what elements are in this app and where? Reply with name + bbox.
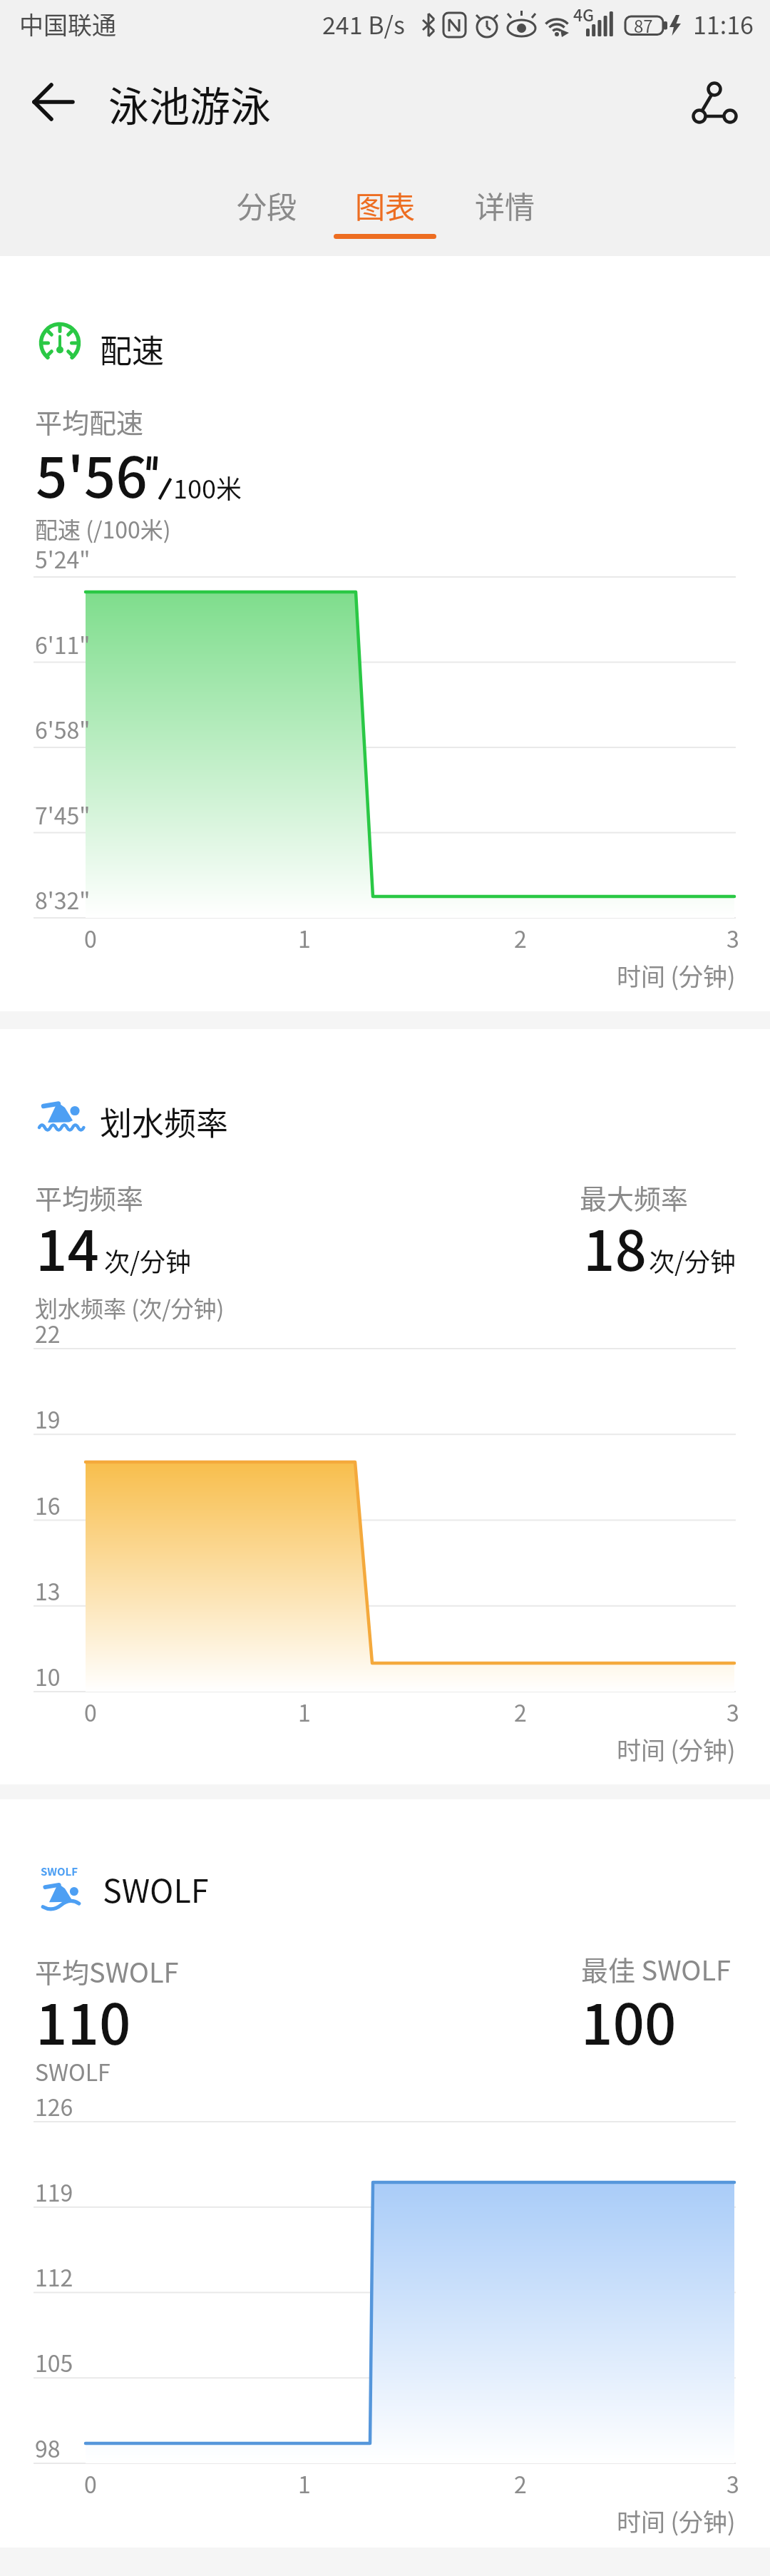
staticText: 126 [35,2090,73,2122]
staticText: 19 [35,1402,61,1435]
staticText: 13 [35,1574,61,1607]
staticText: 3 [727,2467,739,2500]
staticText: 100米 [173,469,242,506]
staticText: 2 [514,1695,527,1728]
staticText: 次/分钟 [104,1242,192,1279]
staticText: 划水频率 (次/分钟) [35,1291,225,1324]
button[interactable] [674,63,752,141]
staticText: 87 [634,13,653,38]
staticText: SWOLF [41,1864,78,1879]
staticText: 时间 (分钟) [617,958,736,993]
staticText: 最佳 SWOLF [581,1949,731,1988]
staticText: 1 [298,921,311,954]
staticText: 11:16 [693,6,754,41]
staticText: 1 [298,2467,311,2500]
staticText: 4G [573,2,595,26]
staticText: 配速 [100,326,165,372]
staticText: 18 [583,1207,647,1287]
staticText: 平均频率 [35,1177,144,1217]
staticText: 7'45" [35,798,91,831]
staticText: 2 [514,2467,527,2500]
button[interactable]: 图表 [327,169,443,240]
staticText: 105 [35,2346,73,2378]
staticText: SWOLF [35,2055,111,2087]
staticText: 110 [36,1980,131,2061]
staticText: 时间 (分钟) [617,1732,736,1767]
staticText: 112 [35,2260,73,2293]
staticText: 5'56 [36,434,148,514]
staticText: 泳池游泳 [108,74,271,133]
staticText: 详情 [475,183,535,227]
staticText: 次/分钟 [649,1242,736,1279]
staticText: 6'11" [35,628,91,660]
staticText: 中国联通 [19,6,116,41]
staticText: 2 [514,921,527,954]
staticText: SWOLF [103,1866,209,1912]
staticText: 划水频率 [100,1098,229,1145]
staticText: 10 [35,1660,61,1692]
staticText: 5'24" [35,542,91,575]
staticText: 22 [35,1317,61,1349]
button[interactable]: 分段 [208,169,325,240]
staticText: 0 [84,2467,97,2500]
staticText: 3 [727,1695,739,1728]
staticText: 3 [727,921,739,954]
staticText: 16 [35,1488,61,1521]
staticText: 最大频率 [580,1177,689,1217]
staticText: 100 [581,1980,677,2061]
button[interactable] [21,70,86,134]
staticText: 平均SWOLF [35,1951,179,1990]
staticText: 分段 [237,183,297,227]
staticText: 配速 (/100米) [35,512,171,545]
staticText: 98 [35,2431,61,2464]
staticText: 14 [36,1207,99,1287]
staticText: 时间 (分钟) [617,2503,736,2538]
staticText: 平均配速 [35,402,144,441]
staticText: 119 [35,2175,73,2208]
staticText: 图表 [355,183,416,227]
staticText: 8'32" [35,883,91,916]
staticText: 1 [298,1695,311,1728]
staticText: 0 [84,1695,97,1728]
staticText: 241 B/s [322,6,405,41]
button[interactable]: 详情 [446,169,563,240]
staticText: 0 [84,921,97,954]
staticText: 6'58" [35,712,91,745]
